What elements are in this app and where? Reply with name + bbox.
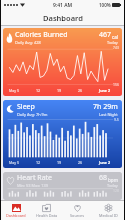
staticText: 9.5 <box>114 117 119 122</box>
staticText: 9:41 AM <box>53 2 73 9</box>
staticText: 156 <box>113 82 119 87</box>
staticText: May 5 <box>9 88 20 93</box>
staticText: May 5 <box>9 160 20 165</box>
staticText: June 2 <box>99 88 110 93</box>
staticText: Last Night <box>99 112 118 117</box>
staticText: Dashboard <box>6 213 26 218</box>
staticText: Calories Burned <box>15 30 68 40</box>
staticText: Sources <box>70 213 85 218</box>
staticText: Sleep <box>17 102 35 112</box>
button[interactable]: Sleep <box>3 100 122 168</box>
button[interactable]: Dashboard <box>1 201 31 220</box>
button[interactable]: Sources <box>62 201 93 220</box>
staticText: Heart Rate <box>17 173 53 183</box>
staticText: 19 <box>57 88 62 93</box>
staticText: June 2 <box>99 160 110 165</box>
staticText: 100% <box>99 2 111 8</box>
staticText: Today <box>107 40 118 45</box>
button[interactable]: Medical ID <box>93 201 124 220</box>
staticText: 68 <box>99 173 108 183</box>
staticText: Daily Avg: 428 <box>15 40 41 45</box>
staticText: 7h 29m <box>93 102 118 112</box>
staticText: bpm <box>108 177 118 183</box>
staticText: Min: 53 Max: 139 <box>17 183 48 188</box>
staticText: 26 <box>78 88 83 93</box>
staticText: 467 <box>99 30 112 40</box>
button[interactable]: Heart Rate <box>3 172 122 200</box>
staticText: Today <box>107 183 118 188</box>
staticText: Daily Avg: 7h 9m <box>17 112 48 117</box>
staticText: 743 <box>113 45 119 50</box>
staticText: 12 <box>36 160 41 165</box>
button[interactable]: Calories Burned <box>3 28 122 96</box>
staticText: Health Data <box>36 213 58 218</box>
staticText: 12 <box>36 88 41 93</box>
staticText: Dashboard <box>43 13 83 23</box>
staticText: 128 <box>113 188 119 193</box>
button[interactable]: Health Data <box>31 201 62 220</box>
staticText: Medical ID <box>99 213 118 218</box>
staticText: 19 <box>57 160 62 165</box>
staticText: cal <box>112 34 118 40</box>
staticText: 26 <box>78 160 83 165</box>
